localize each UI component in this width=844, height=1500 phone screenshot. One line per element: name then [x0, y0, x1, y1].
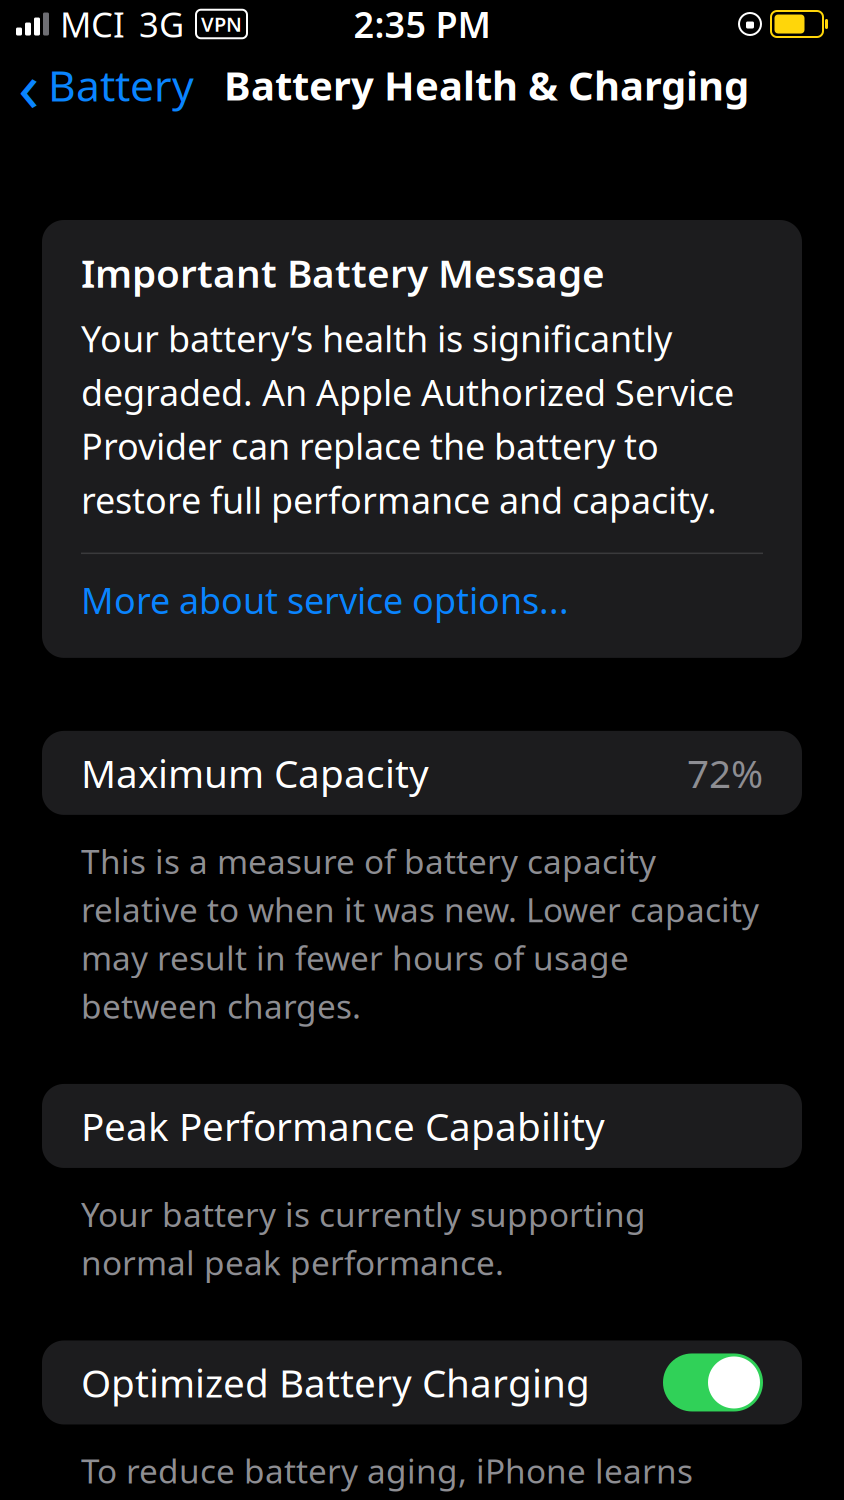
staticText: Peak Performance Capability: [81, 1100, 605, 1152]
staticText: Battery: [48, 57, 194, 113]
staticText: ‹: [18, 39, 39, 131]
staticText: Important Battery Message: [81, 247, 605, 298]
staticText: More about service options...: [81, 576, 569, 624]
staticText: VPN: [201, 11, 242, 37]
button[interactable]: More about service options...: [81, 554, 763, 646]
button[interactable]: Optimized Battery Charging: [42, 1340, 802, 1424]
staticText: Battery Health & Charging: [224, 58, 749, 111]
button[interactable]: Maximum Capacity: [42, 731, 802, 815]
staticText: 2:35 PM: [353, 0, 490, 48]
button[interactable]: Peak Performance Capability: [42, 1084, 802, 1168]
staticText: MCI: [60, 1, 125, 47]
staticText: 72%: [687, 747, 763, 798]
staticText: To reduce battery aging, iPhone learns f…: [81, 1448, 735, 1500]
staticText: Optimized Battery Charging: [81, 1357, 590, 1408]
staticText: Your battery is currently supporting nor…: [81, 1192, 646, 1284]
button[interactable]: ‹: [0, 33, 212, 137]
staticText: Maximum Capacity: [81, 747, 429, 798]
staticText: Your battery’s health is significantly d…: [81, 314, 734, 523]
staticText: This is a measure of battery capacity re…: [81, 839, 759, 1028]
staticText: 3G: [139, 1, 184, 47]
